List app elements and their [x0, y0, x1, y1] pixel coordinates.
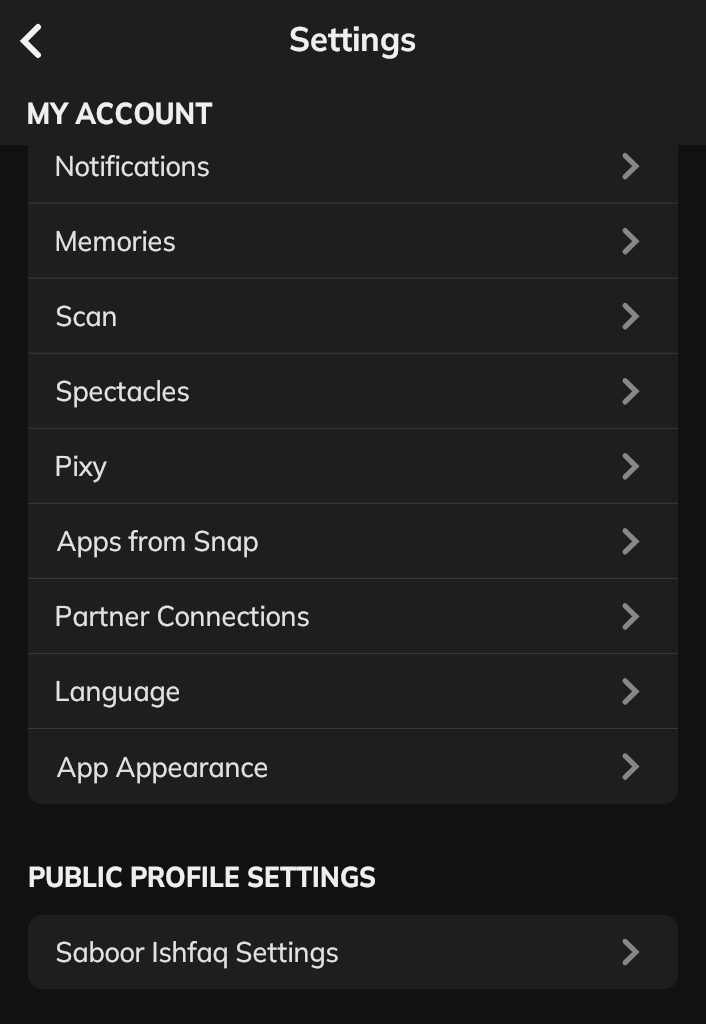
button[interactable]: Apps from Snap	[28, 504, 678, 579]
button[interactable]: Language	[28, 654, 678, 729]
button[interactable]: App Appearance	[28, 729, 678, 804]
button[interactable]: Scan	[28, 279, 678, 354]
button[interactable]: Pixy	[28, 429, 678, 504]
button[interactable]: Saboor Ishfaq Settings	[28, 915, 678, 989]
button[interactable]: Spectacles	[28, 354, 678, 429]
button[interactable]: Memories	[28, 204, 678, 279]
button[interactable]: Partner Connections	[28, 579, 678, 654]
button[interactable]: Back	[6, 16, 55, 65]
button[interactable]: Notifications	[28, 129, 678, 204]
